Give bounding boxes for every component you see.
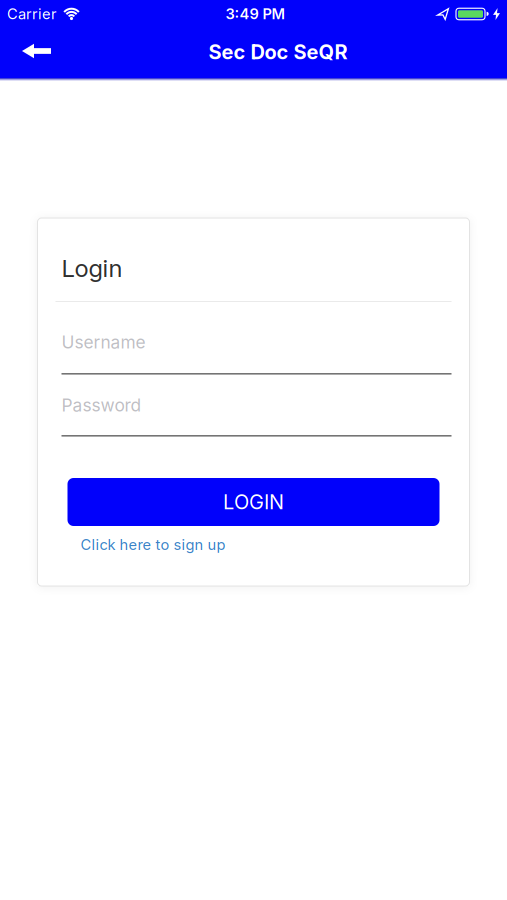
button[interactable]: Username — [61, 332, 451, 375]
button[interactable]: Password — [61, 395, 451, 437]
staticText: Click here to sign up — [80, 536, 225, 553]
staticText: LOGIN — [223, 490, 284, 514]
button[interactable]: LOGIN — [67, 478, 439, 526]
staticText: Sec Doc SeQR — [208, 40, 347, 64]
staticText: Username — [61, 332, 145, 352]
staticText: 3:49 PM — [225, 5, 285, 23]
button[interactable]: Back — [0, 46, 51, 60]
staticText: Carrier — [7, 5, 57, 23]
button[interactable]: Click here to sign up — [80, 536, 225, 553]
staticText: Password — [61, 395, 141, 415]
staticText: Login — [61, 254, 122, 282]
